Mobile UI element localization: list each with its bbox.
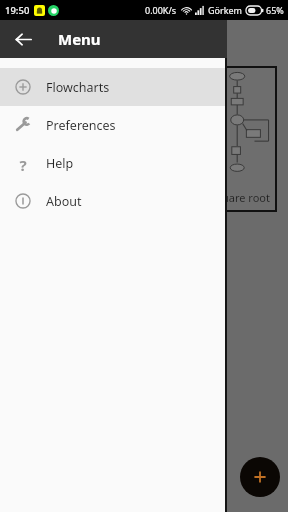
button[interactable]: About (0, 182, 225, 220)
button[interactable]: ? (0, 144, 225, 182)
button[interactable]: uare root (221, 68, 275, 210)
staticText: Preferences (46, 117, 116, 134)
button[interactable]: Back (9, 25, 37, 53)
staticText: 0.00K/s (145, 4, 177, 16)
staticText: Görkem (208, 4, 243, 16)
staticText: uare root (222, 190, 270, 205)
staticText: 19:50 (5, 4, 30, 17)
staticText: ? (19, 155, 27, 171)
button[interactable]: Flowcharts (0, 68, 225, 106)
staticText: Flowcharts (46, 79, 110, 96)
button[interactable]: Preferences (0, 106, 225, 144)
staticText: Menu (58, 29, 101, 49)
staticText: 65% (266, 4, 284, 16)
staticText: About (46, 193, 82, 210)
button[interactable]: Add flowchart (240, 457, 280, 497)
staticText: Help (46, 155, 74, 172)
